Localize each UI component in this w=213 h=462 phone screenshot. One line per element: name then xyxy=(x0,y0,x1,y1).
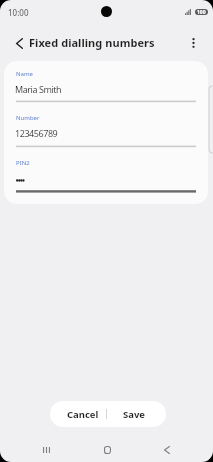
button[interactable]: Recent apps xyxy=(30,434,62,462)
button[interactable]: Number field xyxy=(16,111,196,147)
staticText: 100 xyxy=(197,9,206,15)
staticText: Fixed dialling numbers xyxy=(29,35,155,50)
button[interactable]: Save xyxy=(106,401,166,427)
staticText: Save xyxy=(123,408,146,421)
staticText: 123456789 xyxy=(15,127,58,139)
button[interactable]: Home xyxy=(91,434,123,462)
button[interactable]: More options xyxy=(179,29,207,57)
staticText: Cancel xyxy=(67,408,99,421)
staticText: 10:00 xyxy=(8,7,29,18)
button[interactable]: Cancel xyxy=(50,401,106,427)
staticText: Name xyxy=(16,70,33,78)
button[interactable]: Back xyxy=(151,434,183,462)
button[interactable]: PIN2 field xyxy=(16,156,196,192)
staticText: PIN2 xyxy=(16,159,30,167)
button[interactable]: Navigate up xyxy=(5,29,33,57)
button[interactable]: Name field xyxy=(16,67,196,103)
staticText: Number xyxy=(16,114,40,122)
staticText: Maria Smith xyxy=(15,83,62,95)
